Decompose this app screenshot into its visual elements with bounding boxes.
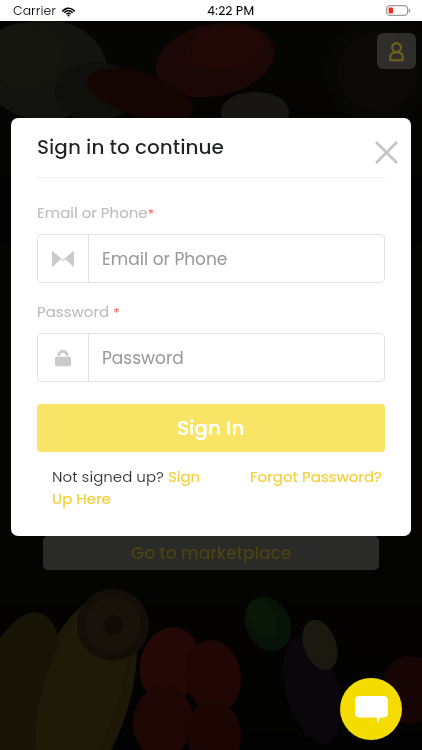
staticText: 4:22 PM — [207, 2, 255, 19]
button[interactable]: Close — [369, 135, 403, 169]
staticText: Sign In — [177, 414, 245, 442]
button[interactable]: Email or Phone — [37, 234, 385, 283]
staticText: Go to marketplace — [131, 541, 292, 565]
button[interactable]: Account — [377, 33, 416, 69]
button[interactable]: Go to marketplace — [43, 536, 379, 570]
button[interactable]: Sign In — [37, 404, 385, 452]
staticText: Sign in to continue — [37, 133, 224, 161]
staticText: Email or Phone — [102, 247, 228, 271]
staticText: Carrier — [13, 2, 56, 19]
button[interactable]: Not signed up? Sign Up Here — [52, 466, 212, 509]
button[interactable]: Chat — [340, 678, 402, 740]
staticText: Password * — [37, 301, 120, 322]
button[interactable]: Forgot Password? — [250, 466, 382, 487]
staticText: Email or Phone* — [37, 202, 154, 223]
button[interactable]: Password — [37, 333, 385, 382]
staticText: Password — [102, 346, 184, 370]
